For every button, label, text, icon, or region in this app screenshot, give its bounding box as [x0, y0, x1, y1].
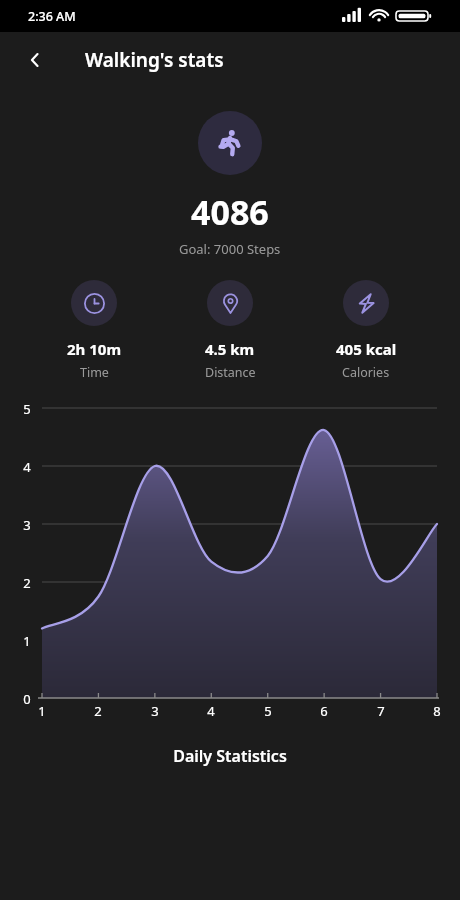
button[interactable]: Calories: [298, 280, 434, 381]
staticText: 4086: [191, 189, 269, 235]
staticText: 2: [20, 574, 34, 592]
staticText: 5: [20, 400, 34, 418]
staticText: 2:36 AM: [28, 8, 76, 25]
staticText: 4: [20, 458, 34, 476]
staticText: 8: [430, 702, 444, 720]
staticText: 7: [374, 702, 388, 720]
staticText: 0: [20, 690, 34, 708]
staticText: Walking's stats: [85, 47, 224, 73]
staticText: 1: [35, 702, 49, 720]
staticText: 2: [91, 702, 105, 720]
button[interactable]: Time: [26, 280, 162, 381]
staticText: 6: [317, 702, 331, 720]
button[interactable]: [198, 111, 262, 175]
staticText: Distance: [205, 364, 256, 381]
staticText: Calories: [342, 364, 390, 381]
staticText: 1: [20, 632, 34, 650]
staticText: 3: [148, 702, 162, 720]
button[interactable]: Back: [18, 43, 52, 77]
staticText: 2h 10m: [67, 339, 122, 359]
staticText: Daily Statistics: [0, 745, 460, 767]
staticText: 405 kcal: [336, 339, 397, 359]
staticText: 3: [20, 516, 34, 534]
button[interactable]: Distance: [162, 280, 298, 381]
staticText: 5: [261, 702, 275, 720]
staticText: 4.5 km: [205, 339, 255, 359]
staticText: 4: [204, 702, 218, 720]
staticText: Goal: 7000 Steps: [179, 240, 281, 258]
staticText: Time: [80, 364, 109, 381]
